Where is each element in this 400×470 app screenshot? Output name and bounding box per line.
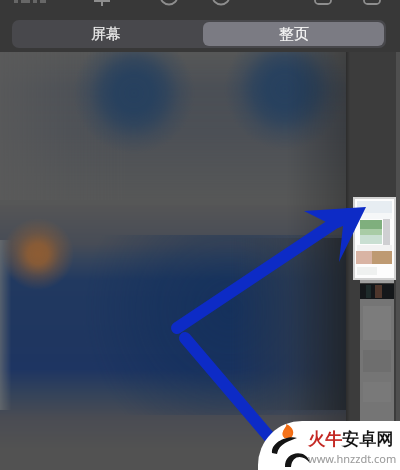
button[interactable]: Crop: [308, 0, 338, 8]
button[interactable]: Add: [86, 0, 120, 8]
staticText: 整页: [279, 25, 309, 44]
button[interactable]: Undo: [154, 0, 186, 8]
button[interactable]: Done: [6, 0, 54, 8]
staticText: 火牛: [308, 429, 342, 450]
button[interactable]: 整页: [203, 22, 384, 46]
button[interactable]: Redo: [206, 0, 238, 8]
staticText: www.hnzzdt.com: [308, 451, 397, 466]
staticText: 屏幕: [91, 25, 121, 44]
button[interactable]: [199, 20, 386, 48]
button[interactable]: 屏幕: [12, 20, 199, 48]
button[interactable]: Share: [358, 0, 388, 8]
staticText: 安卓网: [342, 429, 393, 450]
